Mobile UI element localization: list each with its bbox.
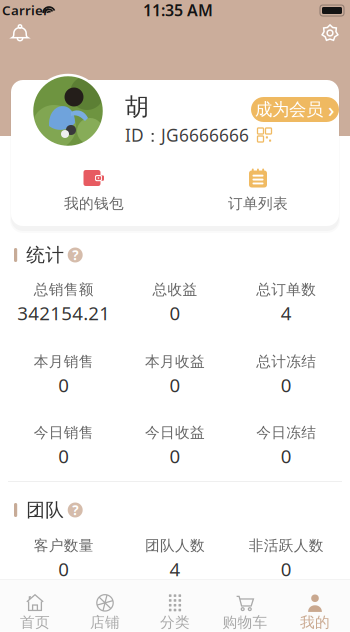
staticText: 4 [281, 301, 292, 325]
button[interactable]: 我的 [280, 580, 350, 632]
staticText: 非活跃人数 [249, 536, 324, 554]
staticText: 0 [281, 444, 292, 468]
staticText: 总收益 [152, 280, 197, 298]
staticText: Carrier [2, 1, 49, 19]
staticText: 胡 [125, 92, 149, 122]
staticText: ? [72, 501, 78, 519]
staticText: 0 [58, 444, 69, 468]
staticText: 本月销售 [34, 352, 94, 370]
staticText: 店铺 [90, 613, 120, 631]
button[interactable]: 订单列表 [193, 166, 323, 212]
staticText: 总销售额 [34, 280, 94, 298]
staticText: 0 [169, 373, 180, 397]
button[interactable]: 分类 [140, 580, 210, 632]
staticText: 成为会员 [255, 99, 323, 120]
button[interactable]: Settings [315, 18, 345, 48]
button[interactable]: Notifications [5, 18, 35, 48]
button[interactable]: 首页 [0, 580, 70, 632]
staticText: 统计 [26, 243, 64, 266]
staticText: 我的 [300, 613, 330, 631]
staticText: 订单列表 [228, 194, 288, 212]
staticText: 客户数量 [34, 536, 94, 554]
staticText: 0 [281, 373, 292, 397]
staticText: 我的钱包 [64, 194, 124, 212]
staticText: 342154.21 [17, 301, 110, 325]
staticText: 0 [58, 557, 69, 581]
button[interactable]: Help [64, 500, 86, 520]
staticText: 首页 [20, 613, 50, 631]
staticText: 总订单数 [256, 280, 316, 298]
staticText: ? [72, 246, 78, 264]
staticText: 0 [169, 301, 180, 325]
staticText: 分类 [160, 613, 190, 631]
staticText: › [328, 96, 335, 123]
staticText: 4 [169, 557, 180, 581]
staticText: 购物车 [222, 613, 267, 631]
staticText: 今日冻结 [256, 423, 316, 441]
button[interactable]: 店铺 [70, 580, 140, 632]
staticText: 总计冻结 [256, 352, 316, 370]
staticText: 0 [58, 373, 69, 397]
staticText: 11:35 AM [143, 0, 213, 21]
button[interactable]: 购物车 [210, 580, 280, 632]
staticText: 团队人数 [145, 536, 205, 554]
button[interactable]: 我的钱包 [29, 168, 159, 214]
staticText: ID：JG6666666 [125, 123, 249, 146]
staticText: 本月收益 [145, 352, 205, 370]
staticText: 今日收益 [145, 423, 205, 441]
staticText: 今日销售 [34, 423, 94, 441]
button[interactable]: Help [64, 245, 86, 265]
staticText: 0 [281, 557, 292, 581]
staticText: 团队 [26, 498, 64, 521]
staticText: 0 [169, 444, 180, 468]
